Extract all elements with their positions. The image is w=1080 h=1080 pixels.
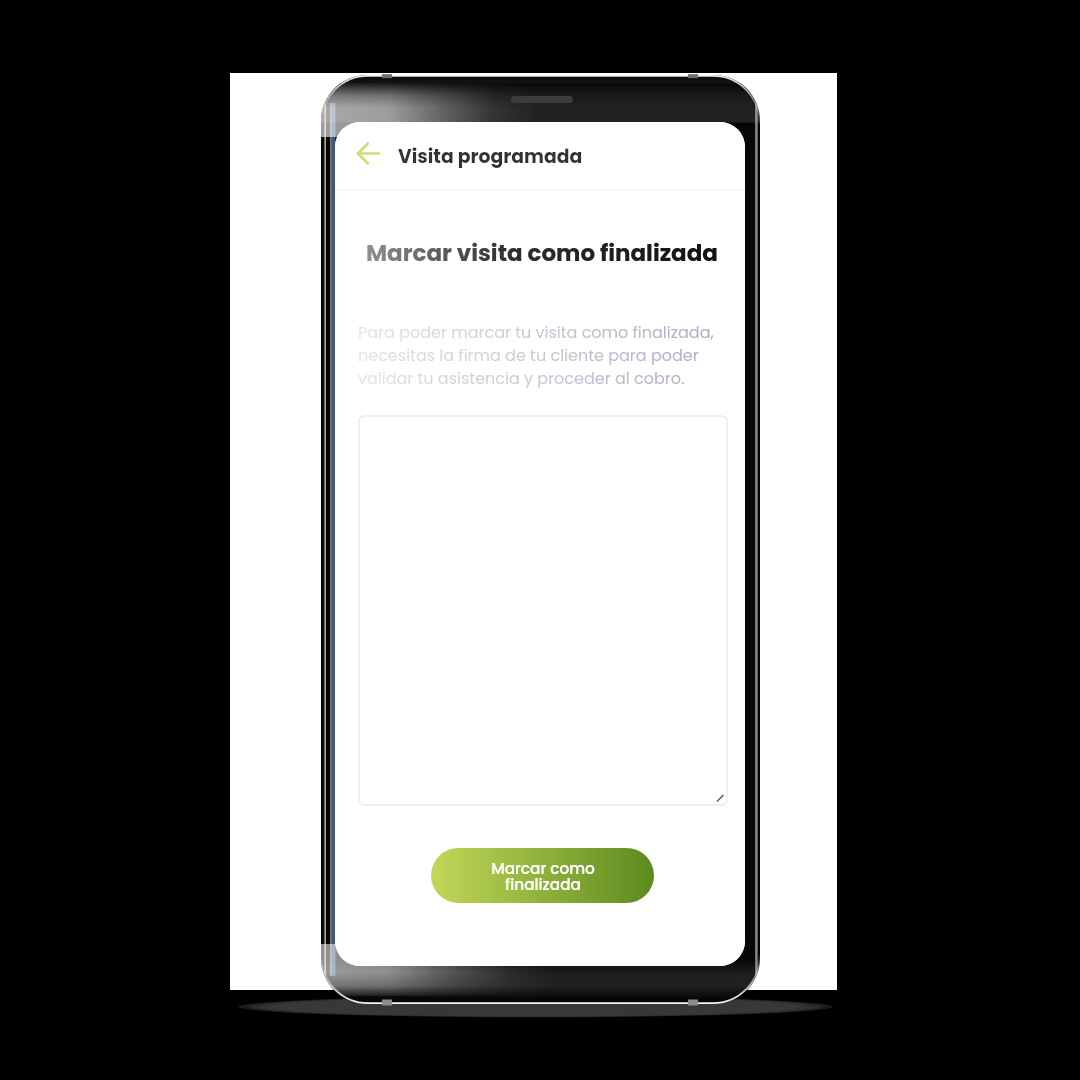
button[interactable]: Marcar como finalizada	[431, 848, 654, 903]
staticText: Marcar visita como finalizada	[366, 237, 718, 269]
staticText: Para poder marcar tu visita como finaliz…	[358, 321, 730, 390]
staticText: Visita programada	[398, 143, 583, 169]
staticText: Marcar como finalizada	[487, 858, 599, 895]
button[interactable]: Back	[353, 138, 383, 168]
